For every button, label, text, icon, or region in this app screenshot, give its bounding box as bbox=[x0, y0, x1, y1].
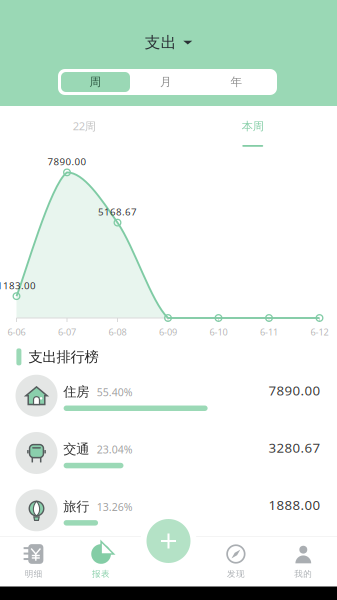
staticText: 本周 bbox=[242, 119, 264, 133]
staticText: 1888.00 bbox=[268, 496, 320, 514]
staticText: 6-10 bbox=[209, 326, 227, 338]
staticText: 住房 bbox=[63, 384, 89, 400]
staticText: 7890.00 bbox=[47, 155, 86, 168]
button[interactable]: 我的 bbox=[270, 537, 337, 587]
button[interactable]: 发现 bbox=[202, 537, 270, 587]
button[interactable]: 报表 bbox=[67, 537, 135, 587]
staticText: 交通 bbox=[63, 441, 89, 457]
staticText: 55.40% bbox=[97, 385, 133, 399]
staticText: 22周 bbox=[73, 118, 96, 134]
button[interactable]: 支出 bbox=[0, 31, 337, 53]
staticText: 明细 bbox=[25, 569, 43, 579]
button[interactable]: 周 bbox=[61, 72, 130, 92]
staticText: 13.26% bbox=[97, 500, 133, 514]
staticText: 7890.00 bbox=[268, 381, 320, 399]
staticText: 旅行 bbox=[63, 498, 89, 515]
staticText: 支出 bbox=[145, 33, 177, 52]
button[interactable]: 住房 bbox=[0, 369, 337, 426]
button[interactable]: Add record bbox=[146, 519, 190, 563]
staticText: 6-06 bbox=[7, 326, 25, 338]
button[interactable]: 本周 bbox=[168, 107, 337, 151]
staticText: 1183.00 bbox=[0, 279, 36, 292]
staticText: 月 bbox=[160, 75, 172, 89]
staticText: 6-12 bbox=[310, 326, 328, 338]
staticText: 6-08 bbox=[108, 326, 126, 338]
button[interactable]: 明细 bbox=[0, 537, 67, 587]
button[interactable]: 月 bbox=[131, 72, 200, 92]
staticText: 支出排行榜 bbox=[28, 348, 98, 366]
button[interactable]: 交通 bbox=[0, 426, 337, 484]
staticText: 6-07 bbox=[58, 326, 76, 338]
staticText: 6-11 bbox=[260, 326, 278, 338]
button[interactable]: 年 bbox=[202, 72, 271, 92]
button[interactable]: 22周 bbox=[0, 107, 168, 145]
staticText: 报表 bbox=[92, 569, 110, 579]
staticText: 3280.67 bbox=[268, 438, 320, 457]
staticText: 6-09 bbox=[159, 326, 177, 338]
staticText: 我的 bbox=[294, 569, 312, 579]
button[interactable]: 旅行 bbox=[0, 484, 337, 541]
staticText: 发现 bbox=[227, 569, 245, 579]
staticText: 23.04% bbox=[97, 442, 133, 457]
staticText: 周 bbox=[89, 75, 101, 89]
staticText: 5168.67 bbox=[98, 205, 137, 218]
staticText: 年 bbox=[230, 75, 242, 89]
